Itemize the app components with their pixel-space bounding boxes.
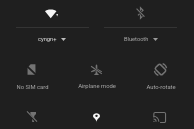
button[interactable]: Airplane mode xyxy=(64,52,129,100)
button[interactable]: Auto-rotate xyxy=(128,52,193,100)
staticText: No SIM card xyxy=(16,84,49,91)
staticText: Bluetooth xyxy=(124,36,149,43)
staticText: Auto-rotate xyxy=(146,84,176,91)
staticText: cyngn+ xyxy=(38,36,57,43)
button[interactable]: Cast xyxy=(127,100,192,129)
button[interactable]: Location xyxy=(65,101,130,129)
button[interactable]: Flashlight xyxy=(0,100,65,129)
staticText: Airplane mode xyxy=(78,83,116,90)
button[interactable]: Bluetooth xyxy=(97,0,194,52)
button[interactable]: No SIM card xyxy=(0,52,65,100)
button[interactable]: Wi-Fi xyxy=(0,0,97,52)
